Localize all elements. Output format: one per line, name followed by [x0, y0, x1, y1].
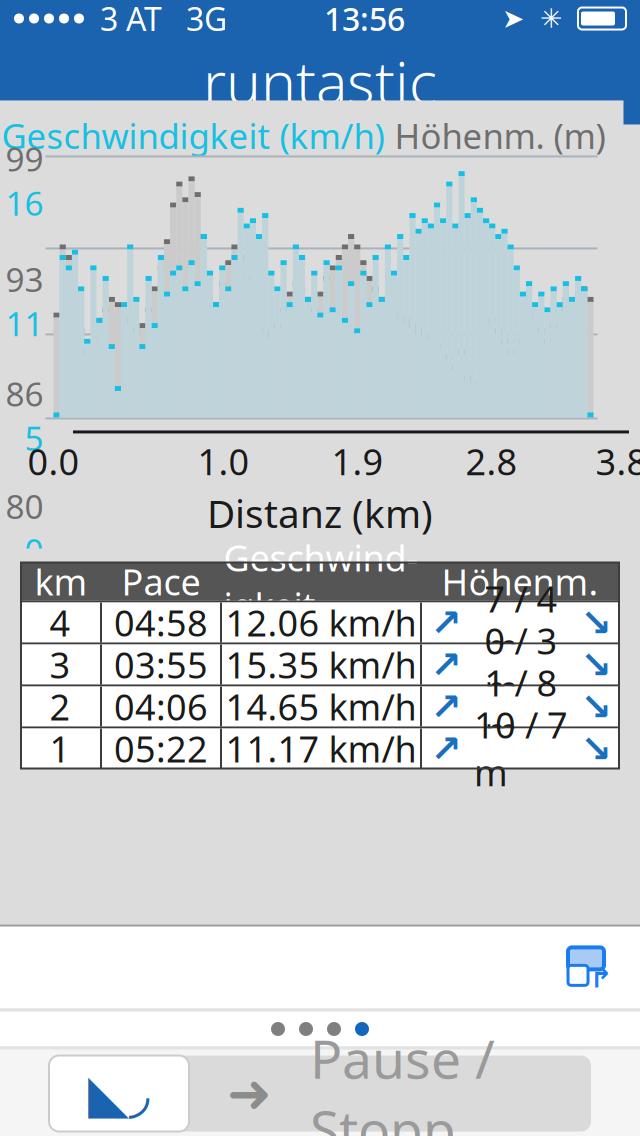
staticText: ↱	[590, 963, 612, 994]
staticText: ✳	[524, 3, 578, 34]
staticText: Höhenm.	[441, 558, 598, 605]
staticText: 0.0	[27, 437, 79, 485]
staticText: 04:06	[114, 683, 208, 730]
staticText: ↗	[430, 685, 461, 728]
staticText: 7 / 4 m	[484, 575, 557, 670]
staticText: 04:58	[114, 599, 208, 646]
staticText: 0 / 3 m	[484, 617, 557, 712]
staticText: 0	[24, 528, 43, 573]
staticText: runtastic	[203, 42, 437, 120]
staticText: ➤	[502, 3, 524, 34]
staticText: 05:22	[114, 725, 208, 772]
staticText: 3 AT 3G	[84, 0, 227, 40]
staticText: ↗	[430, 727, 461, 770]
staticText: Pause / Stopp	[310, 1023, 495, 1136]
staticText: 2	[49, 683, 70, 730]
staticText: Pace	[121, 558, 200, 605]
staticText: ↗	[430, 643, 461, 686]
staticText: 11.17 km/h	[225, 725, 416, 772]
staticText: Distanz (km)	[207, 487, 433, 538]
staticText: Höhenm. (m)	[394, 112, 605, 158]
staticText: 199	[0, 136, 43, 181]
staticText: 2.8	[465, 437, 517, 485]
staticText: 15.35 km/h	[225, 641, 416, 688]
button[interactable]: Pause / Stopp	[49, 1055, 591, 1131]
staticText: 10 / 7 m	[474, 701, 568, 796]
staticText: ↘	[580, 601, 611, 644]
staticText: 186	[0, 371, 43, 416]
staticText: 11	[5, 301, 43, 345]
staticText: 14.65 km/h	[225, 683, 416, 730]
staticText: 03:55	[114, 641, 208, 688]
staticText: 5	[24, 416, 43, 460]
staticText: 16	[5, 181, 43, 225]
staticText: ↘	[580, 727, 611, 770]
staticText: 3.8	[595, 437, 640, 485]
staticText: 3	[49, 641, 70, 688]
staticText: ↘	[580, 685, 611, 728]
staticText: ↗	[430, 601, 461, 644]
staticText: km	[34, 558, 87, 605]
staticText: Geschwindigkeit (km/h)	[1, 112, 384, 158]
staticText: ↘	[580, 643, 611, 686]
staticText: 1.0	[197, 437, 249, 485]
button[interactable]: Share	[568, 948, 612, 992]
staticText: 13:56	[324, 0, 405, 40]
staticText: 193	[0, 257, 43, 301]
staticText: 4	[49, 599, 70, 646]
staticText: 180	[0, 484, 43, 528]
staticText: Geschwindigkeit	[223, 534, 418, 629]
staticText: 1 / 8 m	[484, 659, 557, 754]
staticText: 1.9	[331, 437, 383, 485]
staticText: 1	[49, 725, 70, 772]
staticText: ➜	[189, 1063, 310, 1124]
staticText: 12.06 km/h	[225, 599, 416, 646]
staticText: ◣◞	[88, 1063, 150, 1124]
